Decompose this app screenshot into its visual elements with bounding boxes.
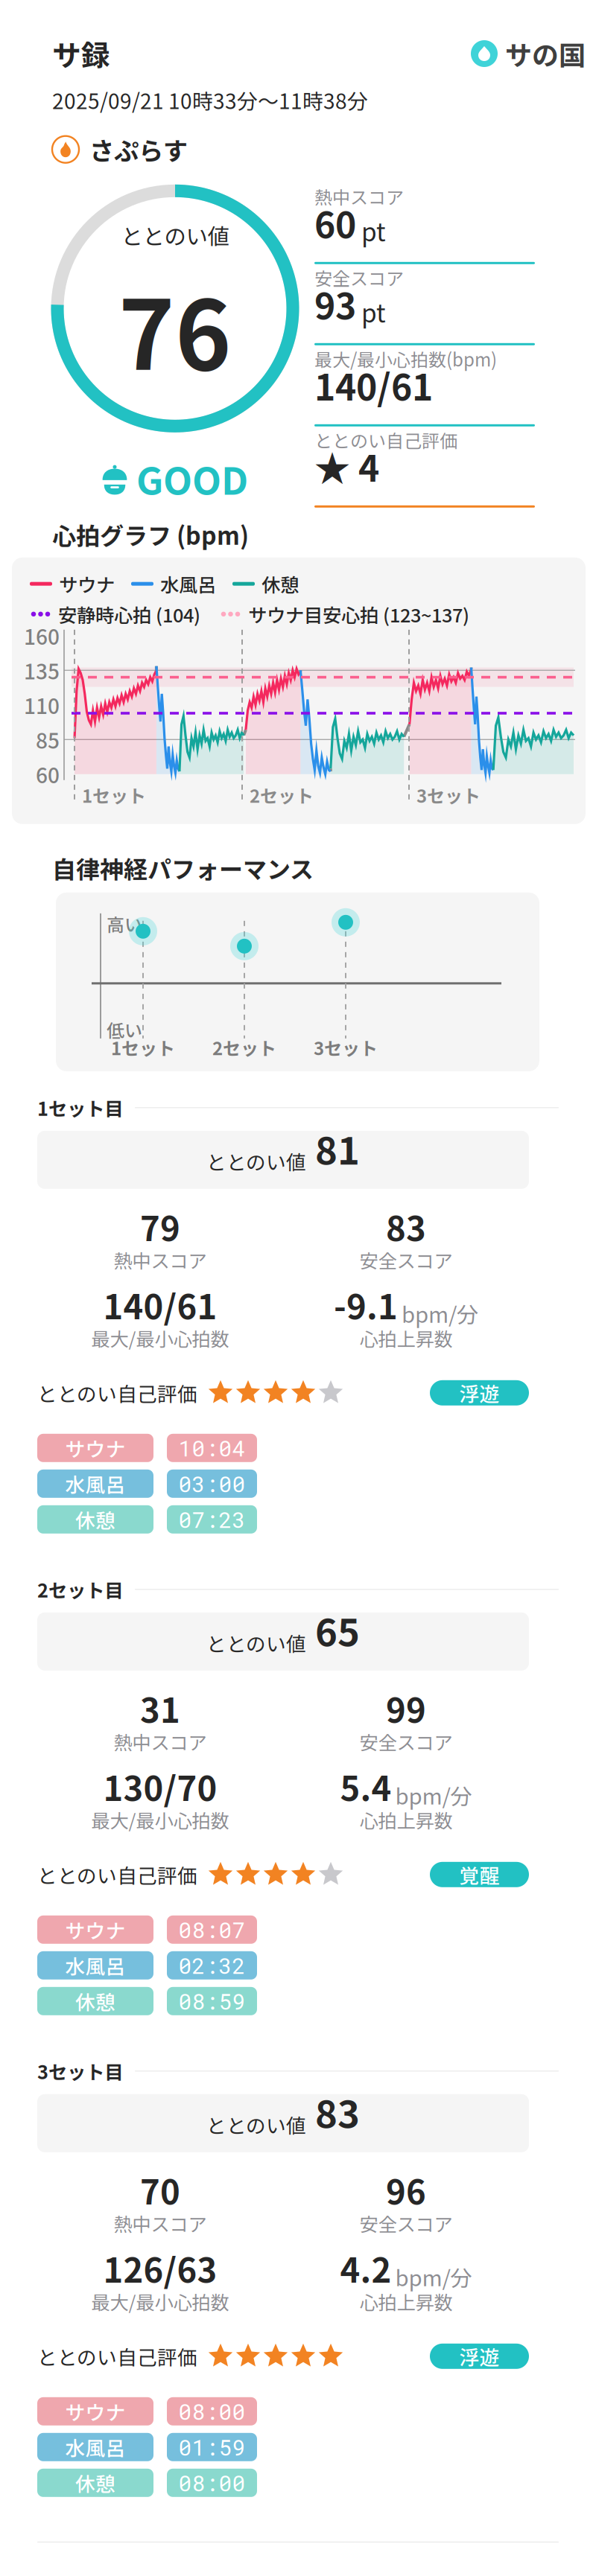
staticText: 3セット xyxy=(314,1034,378,1060)
staticText: 60 xyxy=(36,759,60,789)
staticText: bpm/分 xyxy=(395,1779,472,1811)
staticText: 5.4 xyxy=(340,1762,391,1811)
staticText: bpm/分 xyxy=(395,2261,472,2292)
staticText: -9.1 xyxy=(334,1280,398,1329)
staticText: 3セット目 xyxy=(37,2057,123,2085)
staticText: 熱中スコア xyxy=(314,183,404,209)
staticText: 1セット目 xyxy=(37,1094,123,1121)
staticText: 140/61 xyxy=(314,359,433,411)
staticText: 浮遊 xyxy=(459,2342,500,2371)
staticText: 最大/最小心拍数 xyxy=(91,2288,229,2315)
staticText: 1セット xyxy=(111,1034,175,1060)
staticText: 08:00 xyxy=(178,2468,245,2497)
staticText: 02:32 xyxy=(178,1951,245,1980)
staticText: 心拍上昇数 xyxy=(359,2288,453,2315)
staticText: 2セット目 xyxy=(37,1576,123,1603)
staticText: 85 xyxy=(36,724,60,755)
staticText: 83 xyxy=(315,2084,360,2139)
staticText: 135 xyxy=(24,655,60,685)
staticText: pt xyxy=(361,294,386,330)
staticText: サ録 xyxy=(52,33,110,74)
staticText: 99 xyxy=(386,1684,426,1733)
staticText: ととのい値 xyxy=(206,1147,306,1175)
staticText: 160 xyxy=(24,621,60,651)
staticText: 覚醒 xyxy=(459,1860,500,1889)
staticText: 安静時心拍 (104) xyxy=(58,600,200,628)
staticText: 08:07 xyxy=(178,1915,245,1944)
staticText: 心拍上昇数 xyxy=(359,1806,453,1834)
staticText: さぷらす xyxy=(89,131,188,167)
staticText: 83 xyxy=(386,1202,426,1251)
staticText: 10:04 xyxy=(178,1434,245,1462)
staticText: 60 xyxy=(314,197,356,249)
staticText: 心拍上昇数 xyxy=(359,1324,453,1352)
staticText: 93 xyxy=(314,278,356,330)
staticText: 03:00 xyxy=(178,1469,245,1498)
staticText: ととのい値 xyxy=(206,1628,306,1657)
staticText: 水風呂 xyxy=(65,1951,126,1980)
staticText: 最大/最小心拍数(bpm) xyxy=(314,346,497,372)
staticText: 110 xyxy=(24,690,60,720)
staticText: ととのい値 xyxy=(206,2110,306,2139)
staticText: 01:59 xyxy=(178,2433,245,2461)
button[interactable]: 覚醒 xyxy=(430,1862,529,1887)
staticText: 2セット xyxy=(250,782,314,808)
staticText: ととのい自己評価 xyxy=(37,1860,197,1889)
staticText: サウナ xyxy=(65,1915,126,1944)
staticText: 安全スコア xyxy=(359,1246,453,1274)
staticText: 96 xyxy=(386,2165,426,2214)
staticText: 安全スコア xyxy=(359,2210,453,2237)
staticText: 高い xyxy=(107,911,142,937)
staticText: サウナ xyxy=(59,570,115,597)
staticText: サウナ xyxy=(65,2397,126,2426)
staticText: 最大/最小心拍数 xyxy=(91,1324,229,1352)
staticText: 70 xyxy=(140,2165,180,2214)
staticText: bpm/分 xyxy=(402,1297,478,1329)
staticText: 低い xyxy=(107,1017,142,1042)
staticText: 安全スコア xyxy=(314,265,404,291)
staticText: 126/63 xyxy=(103,2244,217,2292)
staticText: 休憩 xyxy=(75,1505,115,1534)
staticText: ととのい自己評価 xyxy=(37,2342,197,2371)
staticText: 安全スコア xyxy=(359,1728,453,1755)
staticText: GOOD xyxy=(136,451,248,506)
staticText: ととのい自己評価 xyxy=(37,1378,197,1407)
staticText: 3セット xyxy=(416,782,481,808)
staticText: 休憩 xyxy=(75,2468,115,2497)
staticText: 81 xyxy=(315,1121,360,1175)
staticText: 65 xyxy=(315,1602,360,1657)
staticText: 熱中スコア xyxy=(114,1246,207,1274)
button[interactable]: 浮遊 xyxy=(430,2344,529,2369)
staticText: 休憩 xyxy=(261,570,299,597)
staticText: 1セット xyxy=(82,782,146,808)
staticText: 08:00 xyxy=(178,2397,245,2426)
staticText: 自律神経パフォーマンス xyxy=(52,851,314,885)
staticText: 浮遊 xyxy=(459,1378,500,1407)
button[interactable]: 浮遊 xyxy=(430,1380,529,1405)
staticText: 水風呂 xyxy=(160,570,216,597)
staticText: 心拍グラフ (bpm) xyxy=(52,517,249,552)
staticText: ★ 4 xyxy=(314,440,379,492)
staticText: 2セット xyxy=(212,1034,276,1060)
staticText: サウナ目安心拍 (123~137) xyxy=(248,600,469,628)
staticText: 水風呂 xyxy=(65,1469,126,1498)
staticText: 4.2 xyxy=(340,2244,391,2292)
staticText: 76 xyxy=(118,260,232,398)
staticText: サの国 xyxy=(505,34,586,73)
staticText: pt xyxy=(361,213,386,249)
staticText: 140/61 xyxy=(103,1280,217,1329)
staticText: 07:23 xyxy=(178,1505,245,1534)
staticText: 熱中スコア xyxy=(114,2210,207,2237)
staticText: 熱中スコア xyxy=(114,1728,207,1755)
staticText: 2025/09/21 10時33分〜11時38分 xyxy=(52,85,368,115)
staticText: サウナ xyxy=(65,1434,126,1462)
staticText: 休憩 xyxy=(75,1987,115,2015)
staticText: 最大/最小心拍数 xyxy=(91,1806,229,1834)
staticText: 31 xyxy=(140,1684,180,1733)
staticText: 130/70 xyxy=(103,1762,217,1811)
staticText: 79 xyxy=(140,1202,180,1251)
staticText: ととのい自己評価 xyxy=(314,427,457,453)
staticText: ととのい値 xyxy=(121,219,229,251)
staticText: 08:59 xyxy=(178,1987,245,2016)
staticText: 水風呂 xyxy=(65,2433,126,2461)
